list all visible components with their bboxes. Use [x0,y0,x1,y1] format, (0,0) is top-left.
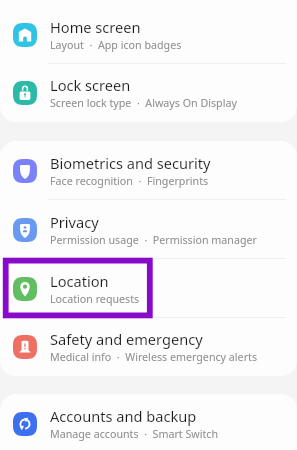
staticText: Safety and emergency [50,329,203,349]
staticText: Permission usage · Permission manager [50,233,257,248]
staticText: Accounts and backup [50,406,197,426]
button[interactable]: Accounts and backup [0,394,297,450]
button[interactable]: Home screen [0,5,297,64]
staticText: Manage accounts · Smart Switch [50,427,219,442]
staticText: Medical info · Wireless emergency alerts [50,350,258,365]
staticText: Home screen [50,17,141,37]
staticText: Location requests [50,292,140,307]
staticText: Screen lock type · Always On Display [50,96,237,111]
staticText: Biometrics and security [50,153,211,173]
staticText: Lock screen [50,75,131,95]
staticText: Layout · App icon badges [50,38,182,53]
button[interactable]: Privacy [0,200,297,259]
button[interactable]: Safety and emergency [0,318,297,376]
button[interactable]: Location [0,259,297,318]
staticText: Privacy [50,212,99,232]
button[interactable]: Biometrics and security [0,141,297,200]
button[interactable]: Lock screen [0,64,297,122]
staticText: Location [50,271,109,291]
staticText: Face recognition · Fingerprints [50,174,209,189]
